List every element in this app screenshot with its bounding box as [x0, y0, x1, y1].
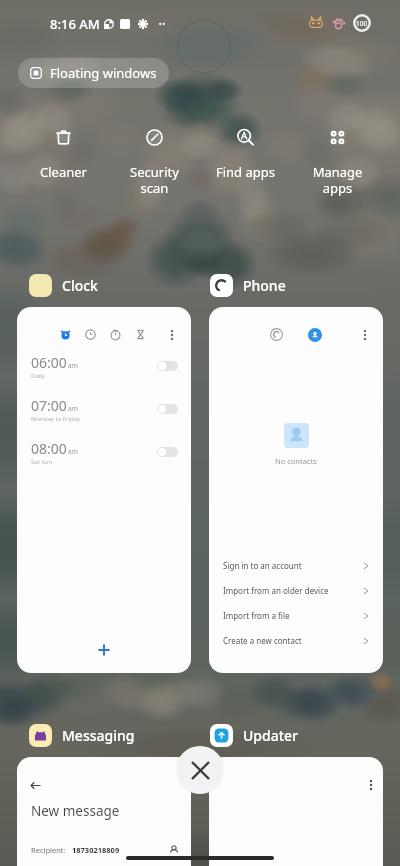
button[interactable]: Alarm toggle — [157, 447, 178, 457]
button[interactable]: Recents — [209, 307, 383, 673]
button[interactable]: Find apps — [200, 118, 291, 181]
staticText: 06:00 — [31, 353, 67, 372]
button[interactable]: Close all — [176, 746, 224, 794]
staticText: Messaging — [62, 726, 135, 745]
staticText: Recipient: — [31, 845, 66, 855]
button[interactable]: 08:00 — [17, 438, 191, 466]
button[interactable]: Messaging — [29, 724, 209, 747]
button[interactable]: Back — [17, 757, 191, 866]
button[interactable]: Back — [23, 773, 47, 797]
button[interactable]: Pick contact — [167, 843, 181, 857]
button[interactable]: Cleaner — [18, 118, 109, 181]
staticText: am — [68, 404, 78, 413]
button[interactable] — [78, 322, 103, 347]
staticText: Clock — [62, 276, 98, 295]
button[interactable]: 07:00 — [17, 395, 191, 423]
button[interactable]: Import from a file — [209, 603, 383, 628]
staticText: Updater — [243, 726, 299, 745]
button[interactable]: Updater — [210, 724, 299, 747]
staticText: New message — [31, 802, 120, 820]
button[interactable] — [128, 322, 153, 347]
staticText: Daily — [31, 372, 45, 380]
staticText: No contacts — [275, 456, 317, 466]
staticText: Import from a file — [223, 610, 290, 621]
button[interactable]: Create a new contact — [209, 628, 383, 653]
staticText: am — [68, 447, 78, 456]
button[interactable]: Manage apps — [292, 118, 383, 196]
staticText: Monday to Friday — [31, 415, 81, 423]
staticText: am — [68, 361, 78, 370]
button[interactable]: Sign in to an account — [209, 553, 383, 578]
button[interactable]: More options — [352, 322, 377, 347]
staticText: 8:16 AM — [50, 15, 100, 33]
button[interactable]: 06:00 — [17, 352, 191, 380]
button[interactable]: Contacts — [302, 322, 327, 347]
button[interactable]: Security scan — [109, 118, 200, 196]
staticText: 100 — [356, 19, 368, 28]
button[interactable]: Alarm toggle — [157, 404, 178, 414]
button[interactable]: More options — [209, 757, 383, 866]
staticText: Phone — [243, 276, 286, 295]
button[interactable]: Floating windows — [18, 58, 169, 88]
button[interactable]: Alarm toggle — [157, 361, 178, 371]
staticText: Manage apps — [292, 163, 383, 196]
button[interactable]: More options — [17, 307, 191, 673]
button[interactable]: Recents — [264, 322, 289, 347]
button[interactable] — [53, 322, 78, 347]
button[interactable]: Phone — [210, 274, 286, 297]
button[interactable]: Import from an older device — [209, 578, 383, 603]
button[interactable]: More options — [159, 322, 184, 347]
staticText: Cleaner — [18, 163, 109, 181]
staticText: Sat Sun — [31, 458, 53, 466]
staticText: 18730218809 — [72, 845, 120, 855]
staticText: Sign in to an account — [223, 560, 302, 571]
staticText: Create a new contact — [223, 635, 302, 646]
staticText: Find apps — [200, 163, 291, 181]
staticText: Security scan — [109, 163, 200, 196]
staticText: Import from an older device — [223, 585, 329, 596]
button[interactable] — [103, 322, 128, 347]
staticText: 07:00 — [31, 396, 67, 415]
button[interactable]: More options — [359, 773, 383, 797]
staticText: Floating windows — [50, 64, 157, 82]
button[interactable]: Add alarm — [90, 636, 118, 664]
button[interactable]: Clock — [29, 274, 209, 297]
staticText: 08:00 — [31, 439, 67, 458]
